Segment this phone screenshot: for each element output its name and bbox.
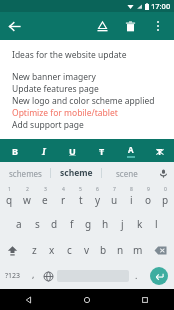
button[interactable]: Home (58, 289, 116, 310)
staticText: B (12, 145, 18, 157)
button[interactable]: 0 (157, 184, 174, 211)
staticText: n (117, 243, 124, 257)
staticText: b (100, 243, 107, 257)
button[interactable]: Text color (116, 139, 145, 162)
staticText: scheme (60, 167, 93, 179)
staticText: Optimize for mobile/tablet (12, 107, 118, 119)
staticText: o (145, 193, 152, 207)
button[interactable]: a (10, 211, 28, 237)
button[interactable]: c (61, 237, 78, 263)
button[interactable]: U (58, 139, 87, 162)
staticText: schemes (9, 168, 42, 179)
button[interactable]: Voice input (152, 162, 174, 184)
staticText: 6 (96, 186, 99, 193)
staticText: z (32, 243, 37, 257)
button[interactable]: j (114, 211, 131, 237)
button[interactable]: l (148, 211, 165, 237)
staticText: New logo and color scheme applied (12, 95, 155, 107)
button[interactable]: z (25, 237, 43, 263)
button[interactable]: 2 (18, 184, 36, 211)
staticText: 4 (62, 186, 65, 193)
staticText: scene (116, 168, 138, 179)
staticText: 9 (147, 186, 150, 193)
staticText: T (157, 145, 163, 157)
button[interactable]: B (0, 139, 29, 162)
button[interactable]: Enter (143, 263, 174, 289)
button[interactable]: d (46, 211, 63, 237)
button[interactable]: 8 (123, 184, 140, 211)
staticText: k (137, 217, 143, 231)
button[interactable]: Backspace (146, 237, 174, 263)
button[interactable]: scheme (51, 162, 101, 184)
staticText: l (155, 217, 158, 231)
staticText: x (49, 243, 55, 257)
button[interactable]: Delete (116, 12, 144, 40)
button[interactable]: 5 (72, 184, 89, 211)
staticText: w (23, 193, 31, 207)
button[interactable]: Back (0, 12, 28, 40)
staticText: j (121, 217, 124, 231)
staticText: y (95, 193, 101, 207)
button[interactable]: 3 (36, 184, 54, 211)
staticText: q (6, 193, 13, 207)
button[interactable]: f (63, 211, 80, 237)
staticText: New banner imagery (12, 71, 96, 83)
staticText: Update features page (12, 83, 99, 95)
staticText: 3 (44, 186, 47, 193)
staticText: h (102, 217, 109, 231)
button[interactable]: ?123 (0, 263, 26, 289)
button[interactable]: Clear formatting (145, 139, 174, 162)
staticText: m (133, 243, 143, 257)
staticText: 2 (26, 186, 29, 193)
button[interactable]: I (29, 139, 58, 162)
staticText: , (32, 268, 35, 280)
button[interactable]: . (129, 263, 143, 289)
button[interactable]: h (97, 211, 114, 237)
button[interactable]: 4 (54, 184, 72, 211)
staticText: Add support page (12, 119, 84, 131)
button[interactable]: b (95, 237, 112, 263)
button[interactable]: v (78, 237, 95, 263)
button[interactable]: Recent apps (116, 289, 174, 310)
button[interactable]: schemes (0, 162, 50, 184)
button[interactable]: Shift (0, 237, 25, 263)
staticText: s (35, 217, 40, 231)
button[interactable]: 6 (89, 184, 106, 211)
button[interactable]: Share (88, 12, 116, 40)
button[interactable]: k (131, 211, 148, 237)
button[interactable]: T (87, 139, 116, 162)
button[interactable]: Back (0, 289, 58, 310)
staticText: c (67, 243, 72, 257)
button[interactable]: 1 (0, 184, 18, 211)
staticText: 5 (79, 186, 82, 193)
staticText: t (79, 193, 83, 207)
staticText: a (16, 217, 22, 231)
staticText: 1 (8, 186, 11, 193)
staticText: 7 (113, 186, 116, 193)
staticText: ?123 (5, 271, 21, 281)
button[interactable]: s (28, 211, 46, 237)
button[interactable]: m (129, 237, 146, 263)
button[interactable]: 9 (140, 184, 157, 211)
button[interactable]: 7 (106, 184, 123, 211)
button[interactable]: n (112, 237, 129, 263)
button[interactable]: , (26, 263, 40, 289)
staticText: 0 (164, 186, 167, 193)
staticText: T (99, 145, 105, 157)
staticText: r (61, 193, 66, 207)
button[interactable]: More options (144, 12, 172, 40)
staticText: i (130, 193, 133, 207)
staticText: d (51, 217, 58, 231)
staticText: 17:00 (151, 1, 171, 11)
button[interactable]: Change language (40, 263, 57, 289)
staticText: f (70, 217, 74, 231)
button[interactable]: x (43, 237, 61, 263)
button[interactable]: g (80, 211, 97, 237)
staticText: u (111, 193, 118, 207)
staticText: p (162, 193, 169, 207)
button[interactable]: scene (102, 162, 152, 184)
staticText: A (128, 144, 134, 155)
staticText: Ideas for the website update (12, 49, 127, 61)
staticText: I (42, 145, 46, 157)
